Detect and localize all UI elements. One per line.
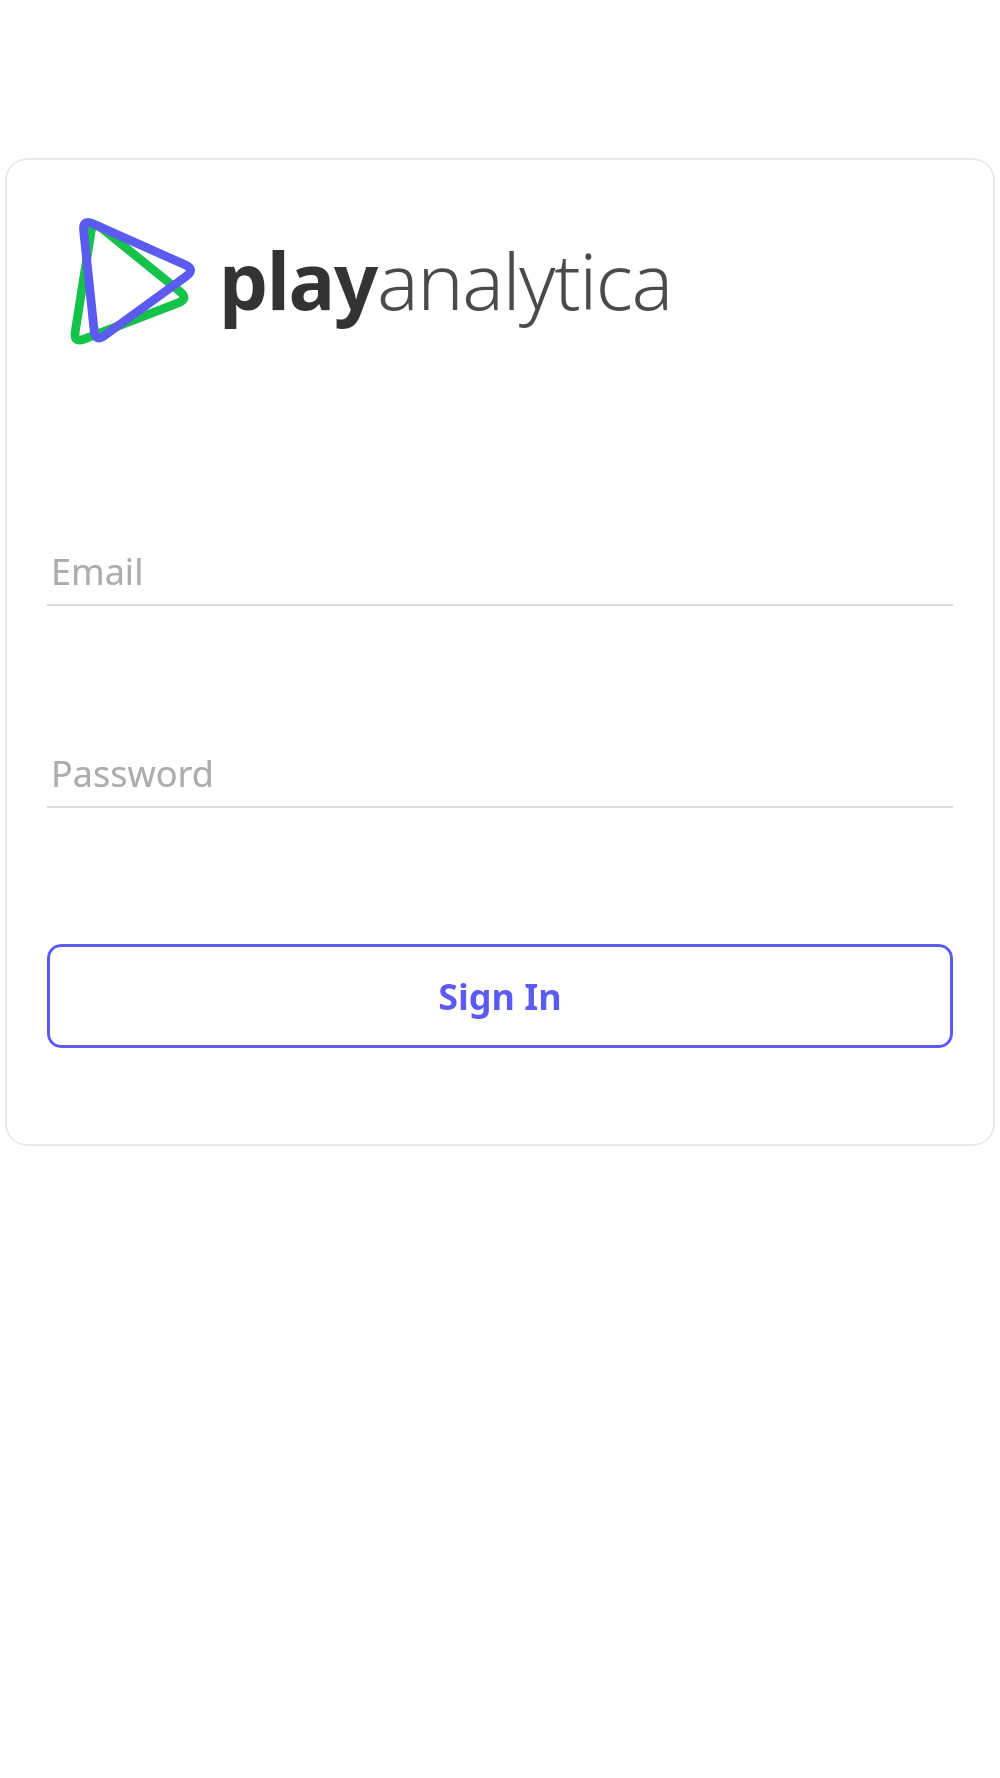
staticText: Password bbox=[51, 749, 214, 798]
button[interactable]: Password bbox=[47, 726, 953, 806]
staticText: play bbox=[219, 227, 377, 333]
button[interactable]: Email bbox=[47, 524, 953, 604]
staticText: Email bbox=[51, 547, 144, 596]
staticText: analytica bbox=[377, 227, 672, 333]
button[interactable]: Sign In bbox=[47, 944, 953, 1048]
staticText: Sign In bbox=[438, 972, 562, 1021]
